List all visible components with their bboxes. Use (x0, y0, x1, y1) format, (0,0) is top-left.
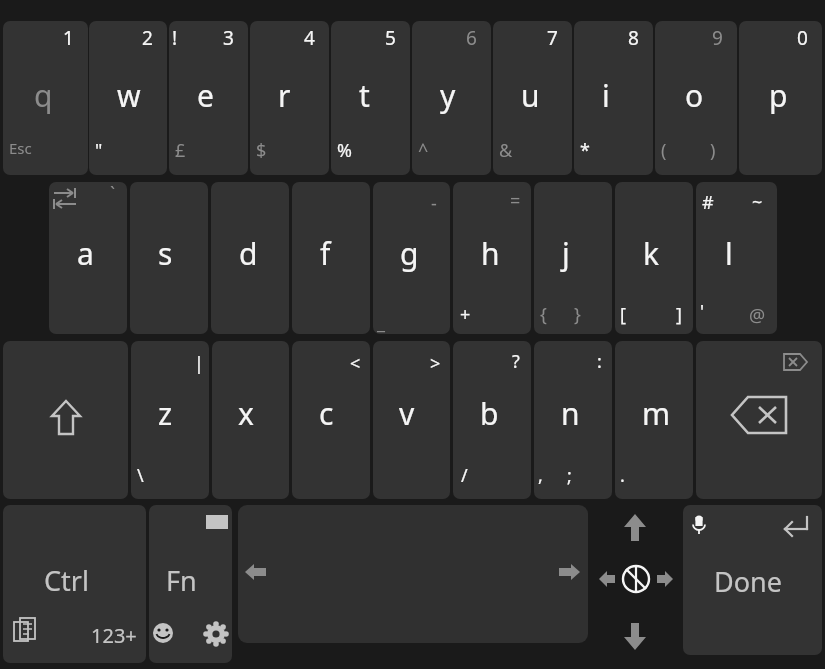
staticText: ) (710, 138, 716, 163)
staticText: ? (512, 349, 520, 374)
staticText: % (337, 138, 352, 163)
staticText: b (480, 393, 499, 434)
staticText: = (510, 188, 521, 213)
staticText: 1 (63, 25, 74, 51)
button[interactable]: p (739, 21, 822, 175)
staticText: i (602, 75, 610, 116)
staticText: n (561, 393, 580, 434)
staticText: [ (620, 302, 626, 327)
staticText: ! (172, 25, 178, 51)
button[interactable]: l (696, 182, 777, 334)
staticText: { (540, 302, 547, 327)
staticText: @ (749, 303, 766, 328)
staticText: 5 (385, 25, 396, 51)
button[interactable]: d (211, 182, 289, 334)
staticText: d (239, 233, 258, 274)
staticText: Fn (166, 562, 197, 599)
staticText: £ (175, 138, 186, 163)
button[interactable]: Arrow keys (595, 505, 679, 663)
staticText: _ (377, 310, 385, 335)
button[interactable]: x (212, 341, 289, 499)
button[interactable]: c (292, 341, 370, 499)
staticText: ; (567, 463, 572, 488)
staticText: " (95, 138, 103, 163)
button[interactable]: h (453, 182, 531, 334)
staticText: y (440, 75, 456, 116)
button[interactable]: w (89, 21, 167, 175)
button[interactable]: y (412, 21, 491, 175)
button[interactable]: a (49, 182, 127, 334)
staticText: g (400, 233, 419, 274)
staticText: Ctrl (44, 562, 89, 599)
staticText: r (278, 75, 291, 116)
button[interactable]: t (331, 21, 410, 175)
staticText: . (620, 463, 625, 488)
staticText: ( (661, 138, 667, 163)
staticText: ^ (418, 138, 429, 163)
staticText: 8 (628, 25, 639, 51)
staticText: f (320, 233, 331, 274)
button[interactable]: g (373, 182, 450, 334)
staticText: m (642, 393, 671, 434)
staticText: s (158, 233, 173, 274)
staticText: : (597, 349, 602, 374)
button[interactable]: r (250, 21, 329, 175)
button[interactable]: Space (238, 505, 588, 643)
button[interactable]: u (493, 21, 572, 175)
staticText: 6 (466, 25, 477, 51)
staticText: < (350, 351, 361, 376)
staticText: | (194, 351, 204, 376)
button[interactable]: m (615, 341, 693, 499)
button[interactable]: q (3, 21, 88, 175)
staticText: \ (137, 463, 144, 488)
button[interactable]: Shift (3, 341, 128, 499)
staticText: a (77, 233, 94, 274)
staticText: 7 (547, 25, 558, 51)
staticText: t (359, 75, 370, 116)
staticText: l (725, 233, 733, 274)
staticText: > (430, 351, 441, 376)
staticText: Esc (9, 138, 32, 158)
staticText: # (702, 190, 714, 215)
staticText: } (574, 302, 581, 327)
staticText: 2 (142, 25, 153, 51)
button[interactable]: i (574, 21, 653, 175)
button[interactable]: b (453, 341, 531, 499)
staticText: + (460, 302, 471, 327)
button[interactable]: n (534, 341, 612, 499)
button[interactable]: s (130, 182, 208, 334)
staticText: h (481, 233, 500, 274)
staticText: 4 (304, 25, 315, 51)
staticText: e (197, 75, 214, 116)
staticText: 123+ (91, 622, 137, 649)
staticText: c (319, 393, 334, 434)
staticText: k (643, 233, 660, 274)
staticText: 3 (223, 25, 234, 51)
button[interactable]: Backspace (696, 341, 822, 499)
staticText: ] (676, 302, 682, 327)
staticText: ` (110, 181, 116, 206)
staticText: Done (714, 563, 782, 600)
button[interactable]: Done (683, 505, 822, 655)
staticText: u (521, 75, 540, 116)
button[interactable]: Ctrl (3, 505, 146, 663)
button[interactable]: z (131, 341, 209, 499)
button[interactable]: v (373, 341, 450, 499)
button[interactable]: Fn (149, 505, 232, 663)
staticText: - (431, 191, 437, 216)
staticText: 9 (712, 25, 723, 51)
staticText: q (34, 75, 53, 116)
button[interactable]: k (615, 182, 693, 334)
button[interactable]: e (169, 21, 248, 175)
staticText: v (399, 393, 415, 434)
button[interactable]: f (292, 182, 370, 334)
staticText: * (580, 138, 590, 163)
staticText: x (238, 393, 254, 434)
staticText: p (769, 75, 788, 116)
button[interactable]: j (534, 182, 612, 334)
button[interactable]: o (655, 21, 737, 175)
staticText: & (499, 138, 513, 163)
staticText: / (461, 463, 468, 488)
staticText: ~ (752, 190, 763, 215)
staticText: z (158, 393, 173, 434)
